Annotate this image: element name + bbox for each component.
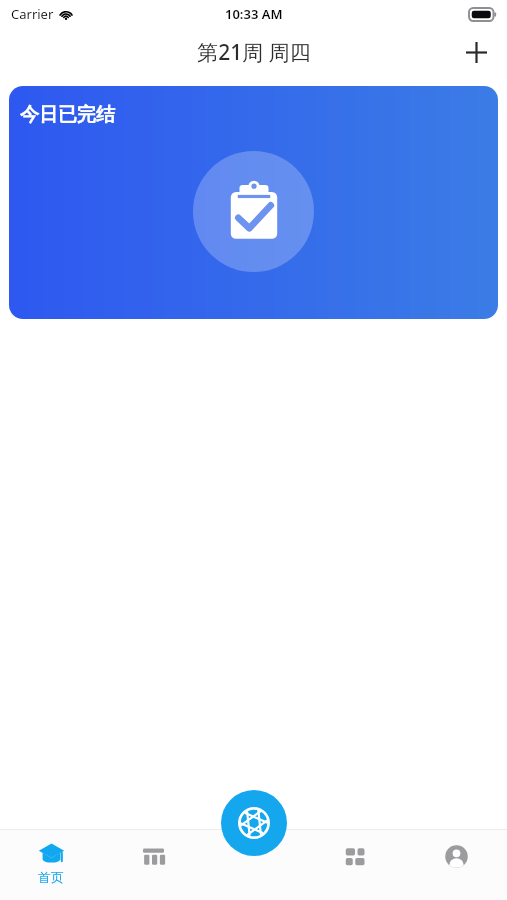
staticText: Carrier: [11, 5, 54, 23]
button[interactable]: 首页: [0, 829, 102, 900]
button[interactable]: Camera: [221, 790, 287, 856]
button[interactable]: Modules: [305, 829, 406, 900]
staticText: 今日已完结: [20, 103, 115, 127]
button[interactable]: 今日已完结: [9, 86, 498, 319]
staticText: 首页: [38, 869, 64, 885]
button[interactable]: Add: [454, 30, 498, 74]
button[interactable]: Courses: [102, 829, 204, 900]
button[interactable]: Profile: [406, 829, 507, 900]
staticText: 第21周 周四: [197, 38, 311, 67]
staticText: 10:33 AM: [225, 5, 283, 23]
